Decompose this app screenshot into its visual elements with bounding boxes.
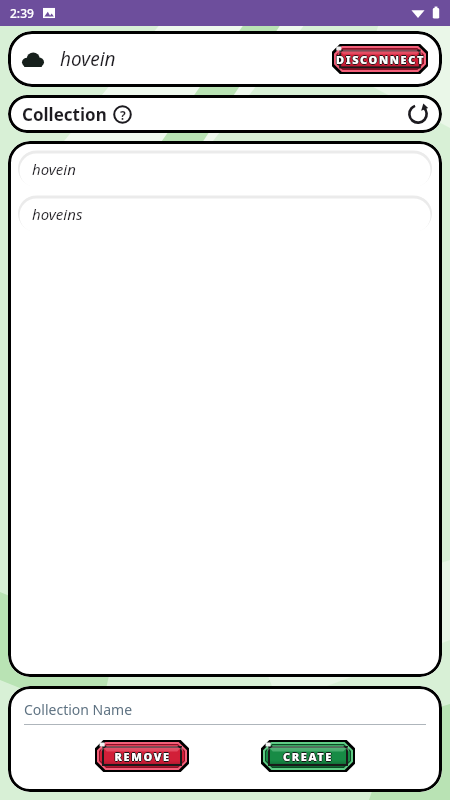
staticText: REMOVE	[114, 750, 171, 765]
button[interactable]: DISCONNECT	[332, 44, 428, 74]
button[interactable]: Collection Name	[24, 700, 426, 725]
button[interactable]: Help	[113, 105, 132, 124]
staticText: DISCONNECT	[336, 52, 425, 67]
staticText: hoveins	[32, 204, 83, 224]
staticText: hovein	[60, 46, 116, 72]
staticText: Collection	[22, 103, 107, 126]
button[interactable]: hovein	[18, 150, 432, 187]
button[interactable]: CREATE	[261, 740, 355, 772]
button[interactable]: Refresh	[406, 102, 430, 126]
staticText: REMOVE	[114, 749, 171, 764]
button[interactable]: hovein	[8, 31, 442, 87]
staticText: REMOVE	[113, 749, 170, 764]
staticText: DISCONNECT	[337, 52, 426, 67]
staticText: CREATE	[282, 749, 332, 764]
button[interactable]: hoveins	[18, 195, 432, 232]
staticText: CREATE	[284, 749, 334, 764]
staticText: 2:39	[10, 5, 34, 21]
staticText: CREATE	[283, 749, 333, 764]
button[interactable]: REMOVE	[95, 740, 189, 772]
staticText: REMOVE	[115, 749, 172, 764]
staticText: CREATE	[283, 748, 333, 763]
staticText: DISCONNECT	[336, 53, 425, 68]
staticText: CREATE	[283, 750, 333, 765]
staticText: DISCONNECT	[336, 51, 425, 66]
staticText: Collection Name	[24, 700, 133, 719]
staticText: REMOVE	[114, 748, 171, 763]
staticText: hovein	[32, 159, 76, 179]
staticText: ?	[120, 107, 126, 123]
staticText: DISCONNECT	[335, 52, 424, 67]
